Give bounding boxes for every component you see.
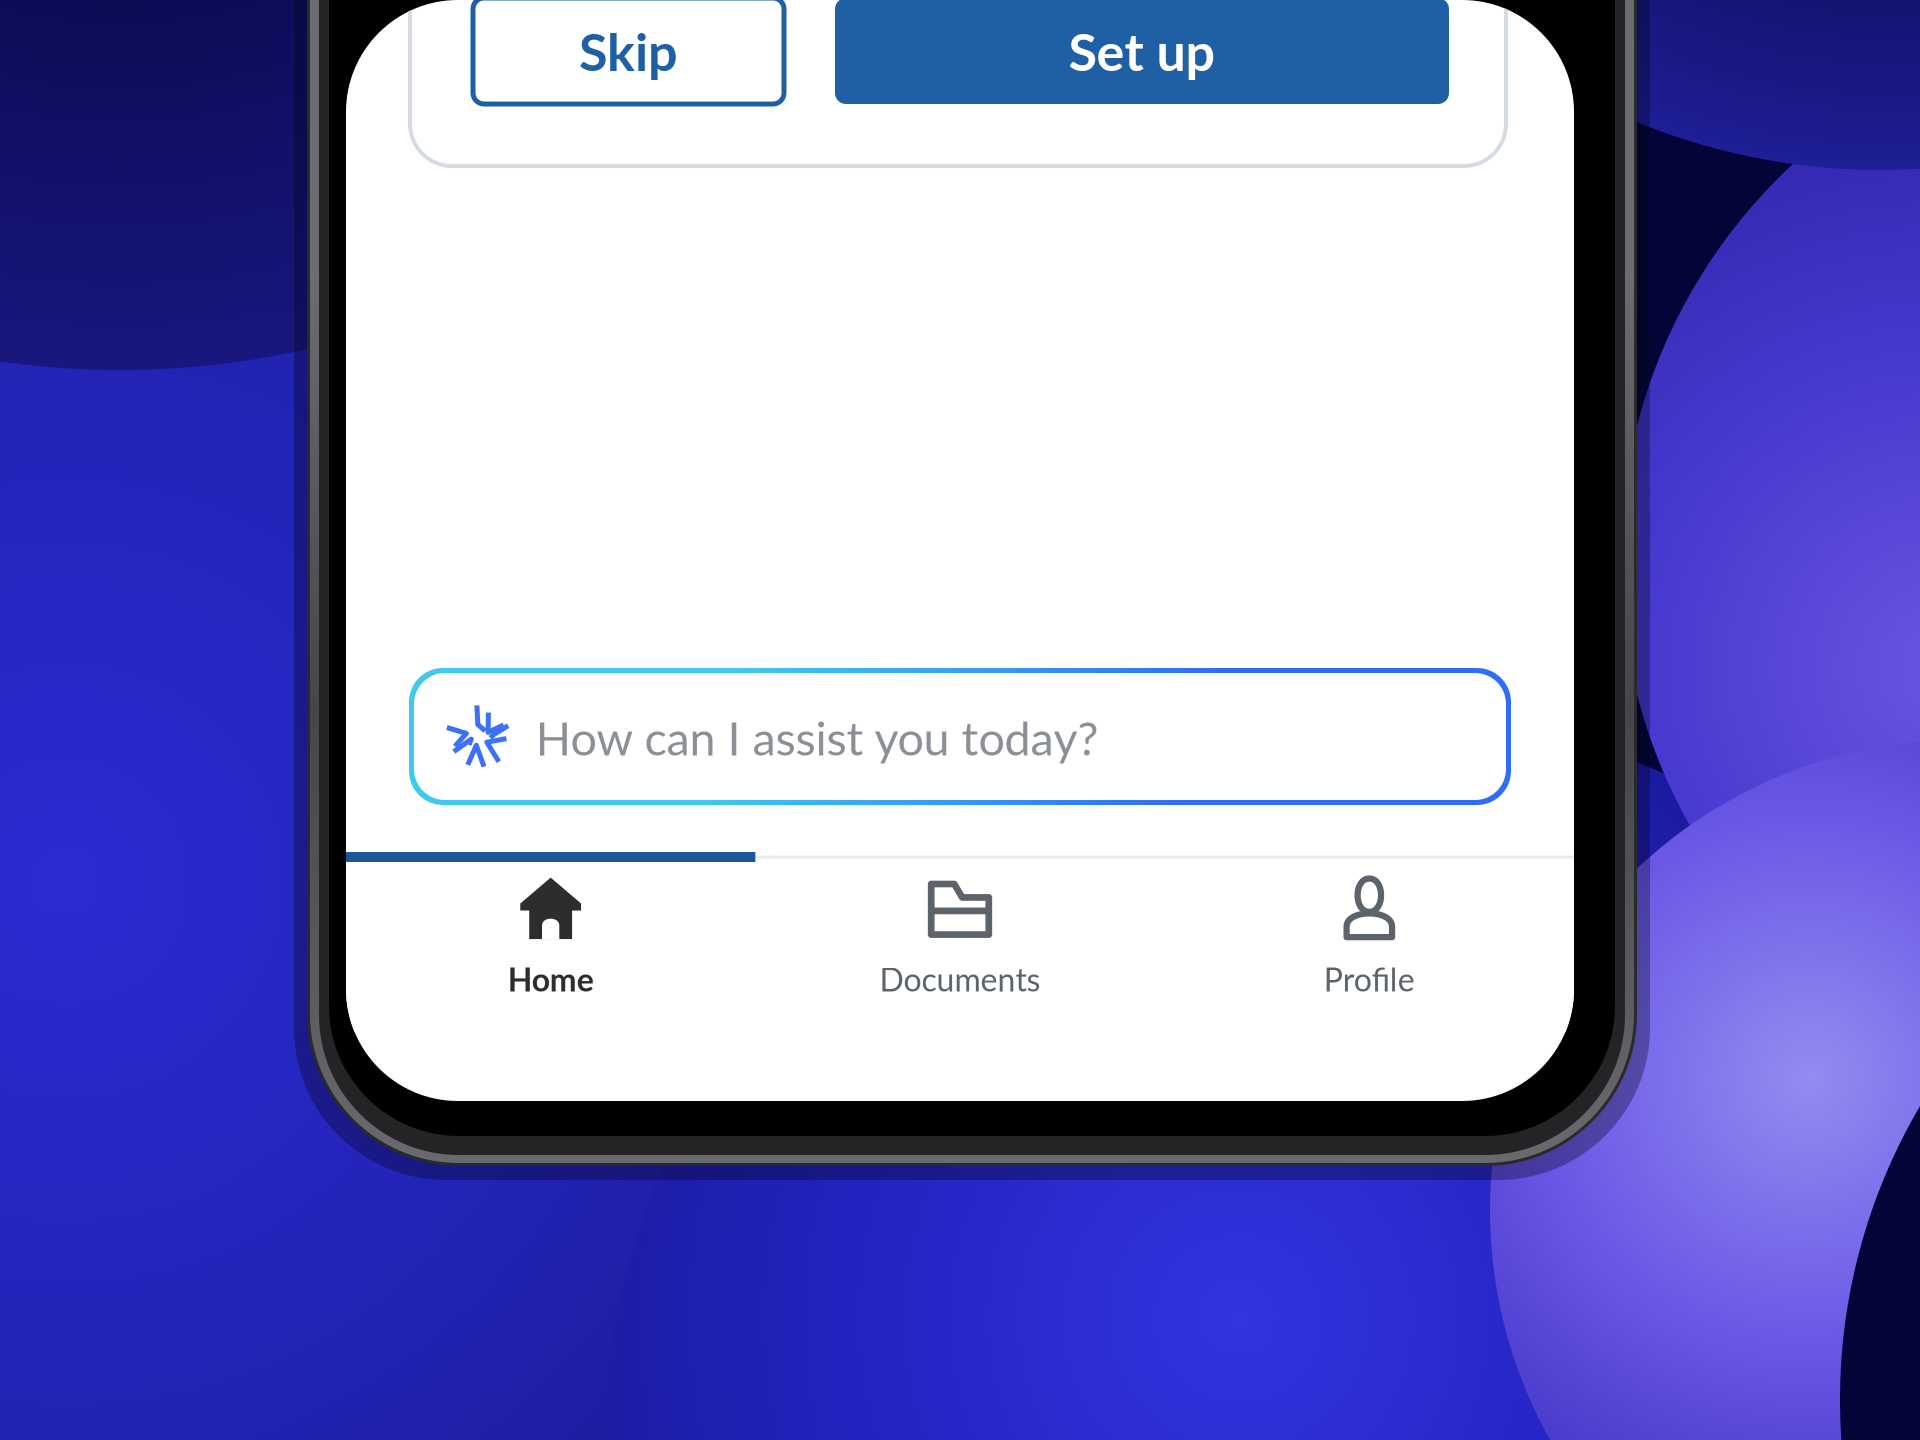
- button[interactable]: How can I assist you today?: [409, 668, 1511, 805]
- staticText: Profile: [1324, 960, 1415, 998]
- button[interactable]: Profile: [1165, 862, 1574, 1032]
- staticText: Documents: [879, 960, 1040, 998]
- button[interactable]: Skip: [473, 0, 784, 104]
- button[interactable]: Home: [346, 862, 755, 1032]
- staticText: Set up: [1068, 20, 1215, 82]
- button[interactable]: Set up: [835, 0, 1449, 104]
- button[interactable]: Documents: [755, 862, 1165, 1032]
- staticText: Skip: [579, 20, 678, 82]
- staticText: Home: [508, 960, 594, 998]
- staticText: How can I assist you today?: [535, 709, 1098, 765]
